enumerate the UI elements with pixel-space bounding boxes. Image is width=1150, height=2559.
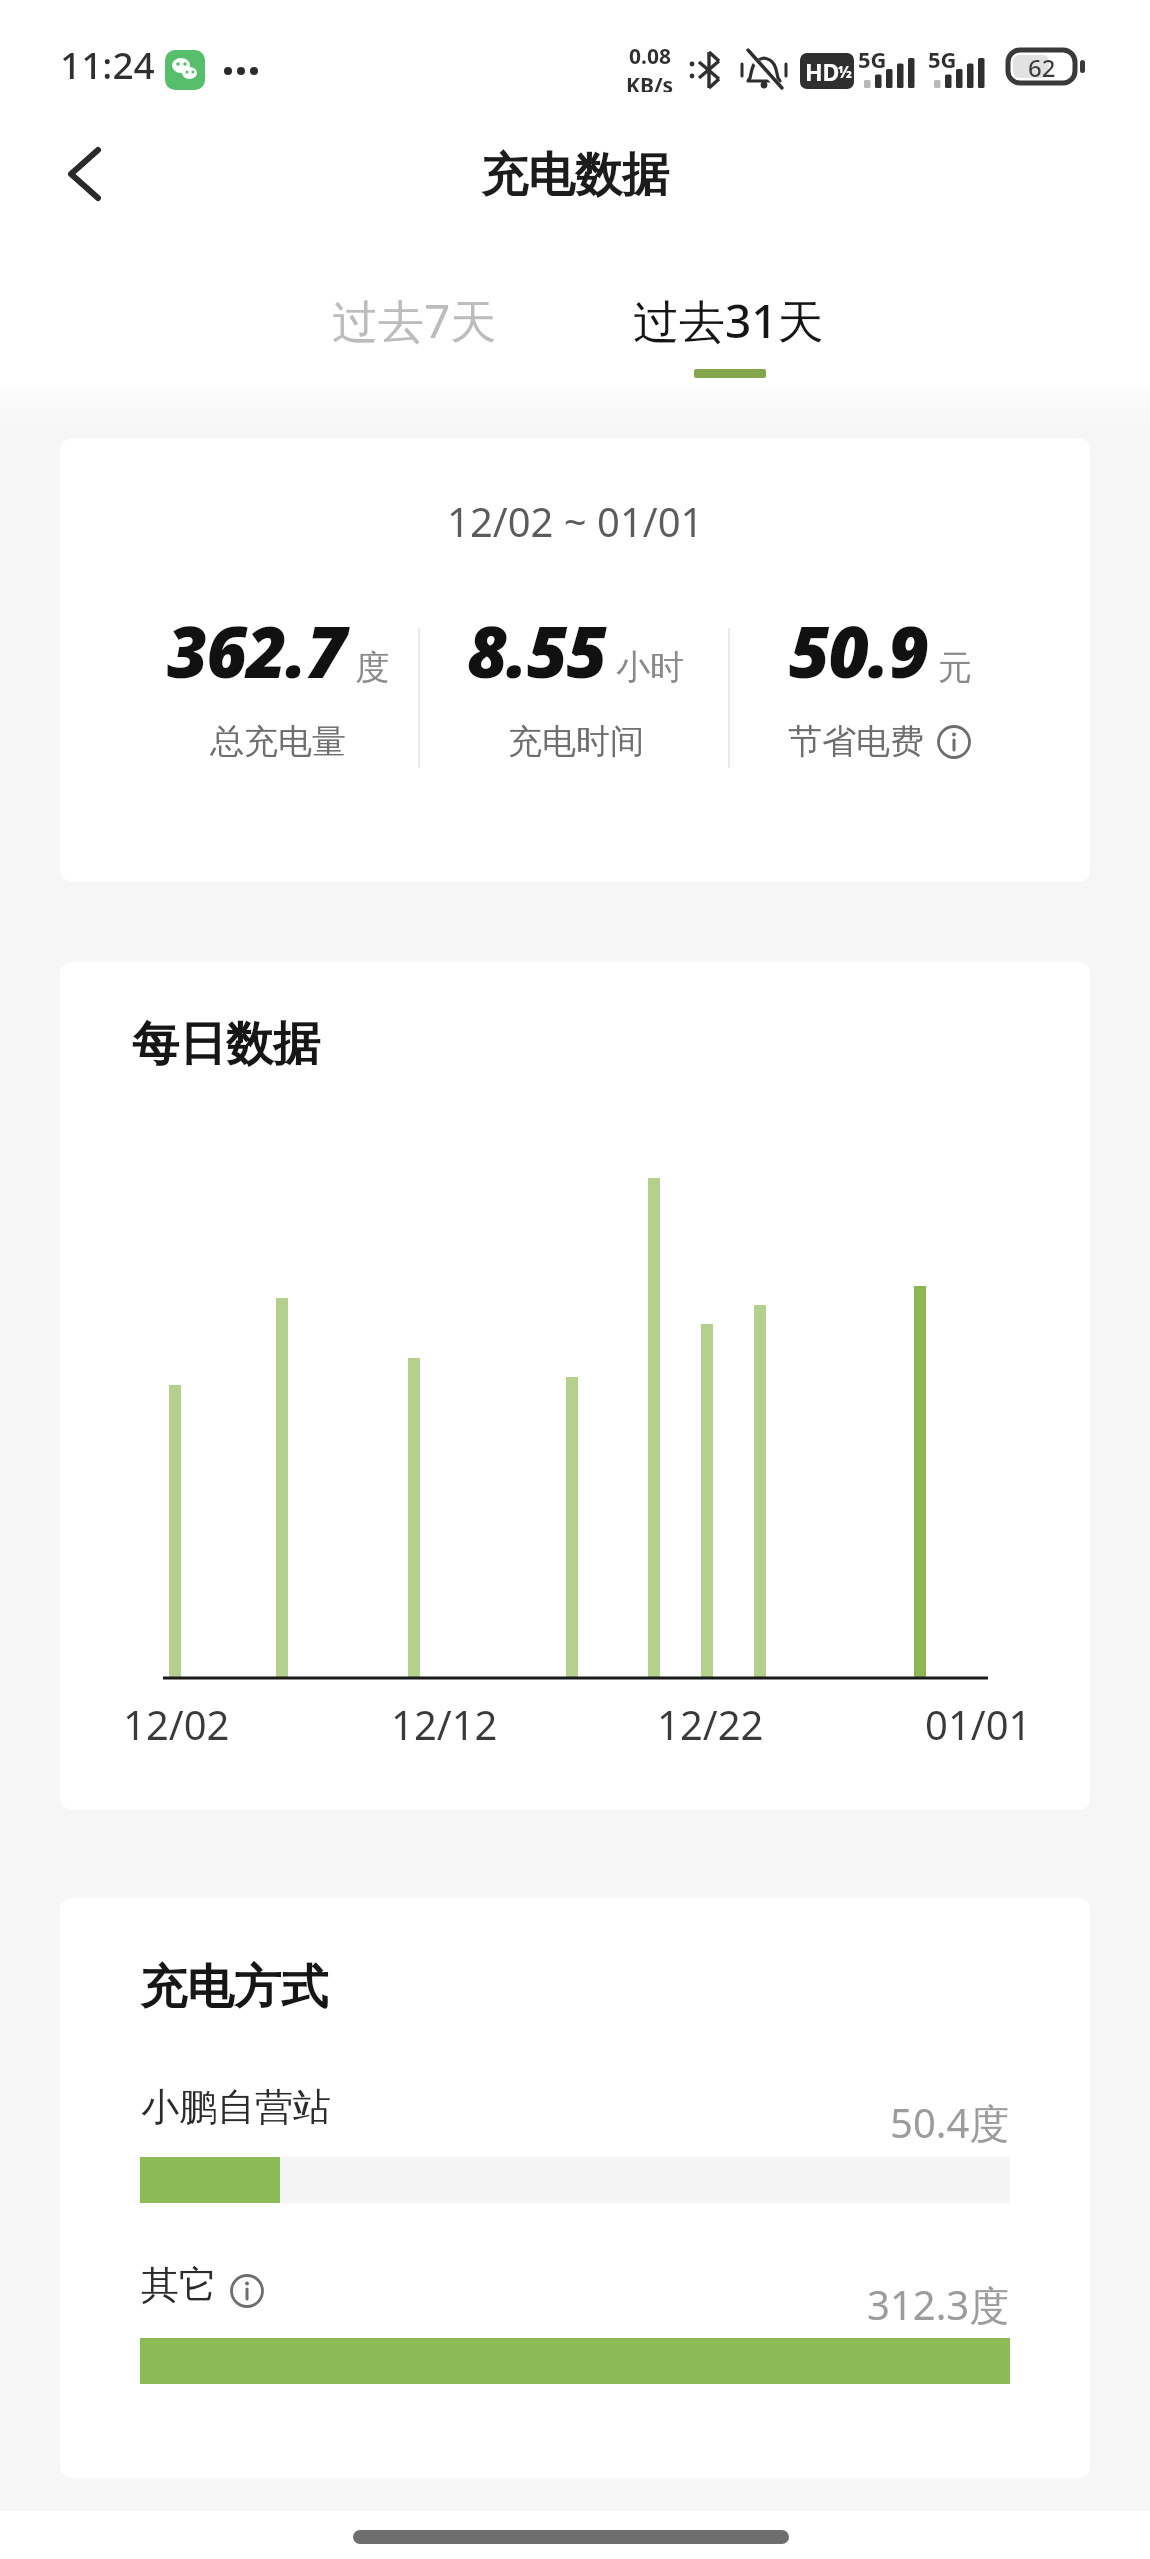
staticText: 312.3度 [867, 2277, 1010, 2332]
staticText: 5G [928, 44, 957, 70]
staticText: 0.08 [629, 42, 671, 71]
staticText: ½ [838, 61, 852, 83]
staticText: 小时 [616, 646, 684, 689]
staticText: KB/s [626, 71, 674, 92]
staticText: 每日数据 [132, 1015, 320, 1074]
staticText: 5G [858, 44, 887, 70]
button[interactable]: 过去31天 [578, 280, 878, 360]
staticText: 50.4度 [890, 2095, 1010, 2150]
staticText: 过去31天 [633, 289, 824, 352]
staticText: 过去7天 [332, 289, 497, 352]
staticText: 362.7 [167, 603, 346, 698]
staticText: 50.9 [789, 603, 929, 698]
staticText: 其它 [141, 2261, 217, 2309]
staticText: HD [805, 56, 840, 87]
staticText: 62 [1028, 51, 1056, 84]
staticText: 12/02 [123, 1697, 230, 1751]
staticText: 8.55 [467, 603, 607, 698]
staticText: 12/02 ~ 01/01 [447, 494, 704, 548]
staticText: 01/01 [925, 1697, 1032, 1751]
staticText: 充电时间 [508, 720, 644, 763]
staticText: 度 [355, 646, 389, 689]
staticText: 11:24 [60, 39, 155, 89]
button[interactable] [140, 2157, 1010, 2203]
staticText: 总充电量 [210, 720, 346, 763]
staticText: 12/12 [391, 1697, 498, 1751]
button[interactable]: 过去7天 [264, 280, 564, 360]
button[interactable] [229, 2273, 265, 2309]
staticText: 充电数据 [481, 146, 669, 205]
button[interactable] [40, 130, 130, 220]
staticText: 节省电费 [788, 720, 924, 763]
staticText: 元 [938, 646, 972, 689]
button[interactable] [936, 724, 972, 760]
staticText: 小鹏自营站 [141, 2083, 331, 2131]
staticText: 充电方式 [140, 1958, 328, 2017]
staticText: 12/22 [657, 1697, 764, 1751]
